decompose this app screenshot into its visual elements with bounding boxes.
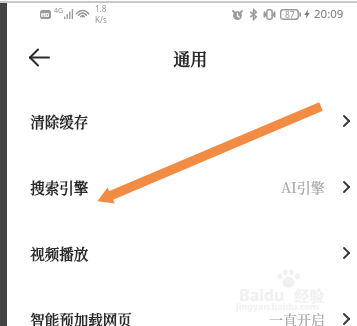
- staticText: 1.8: [95, 3, 107, 14]
- button[interactable]: 视频播放: [0, 220, 357, 286]
- staticText: 87: [285, 9, 295, 20]
- staticText: 清除缓存: [30, 111, 88, 132]
- staticText: 搜索引擎: [30, 177, 88, 198]
- button[interactable]: 清除缓存: [0, 88, 357, 154]
- staticText: jingyan.baidu.com: [236, 300, 319, 312]
- button[interactable]: Back: [26, 42, 56, 72]
- staticText: AI引擎: [281, 177, 325, 197]
- staticText: HD: [41, 11, 50, 18]
- staticText: 20:09: [314, 6, 344, 22]
- staticText: 一直开启: [269, 309, 325, 326]
- staticText: 经验: [294, 285, 325, 307]
- button[interactable]: 智能预加载网页: [0, 286, 357, 326]
- staticText: 视频播放: [30, 243, 88, 264]
- staticText: 4G: [54, 6, 64, 16]
- staticText: K/s: [95, 14, 107, 25]
- staticText: Baidu: [239, 284, 285, 306]
- staticText: 通用: [173, 46, 207, 70]
- button[interactable]: 搜索引擎: [0, 154, 357, 220]
- staticText: 智能预加载网页: [30, 309, 132, 326]
